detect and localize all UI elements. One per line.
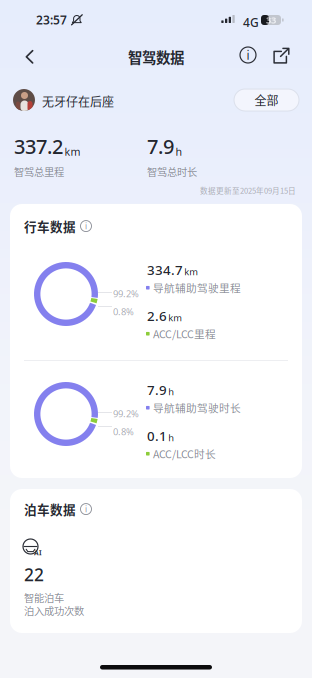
staticText: i: [85, 504, 87, 514]
staticText: 全部: [254, 91, 278, 109]
button[interactable]: 全部: [234, 89, 299, 111]
staticText: h: [168, 385, 174, 398]
staticText: km: [64, 145, 80, 159]
staticText: 7.9: [147, 381, 167, 399]
staticText: h: [168, 431, 174, 444]
staticText: 行车数据: [24, 217, 76, 235]
staticText: km: [184, 265, 198, 278]
staticText: 导航辅助驾驶里程: [153, 280, 241, 295]
staticText: 智驾总里程: [14, 164, 64, 179]
staticText: 0.1: [147, 427, 167, 445]
staticText: 99.2%: [113, 287, 139, 300]
staticText: 337.2: [14, 133, 63, 160]
staticText: i: [85, 221, 87, 231]
staticText: 7.9: [147, 133, 174, 160]
staticText: 4G: [243, 14, 259, 30]
staticText: i: [246, 47, 249, 63]
staticText: 23:57: [36, 12, 67, 28]
staticText: 数据更新至2025年09月15日: [200, 185, 296, 196]
staticText: h: [175, 145, 182, 159]
staticText: 智驾数据: [128, 46, 184, 67]
staticText: 泊车数据: [24, 500, 76, 518]
staticText: 导航辅助驾驶时长: [153, 400, 241, 415]
button[interactable]: Share: [268, 42, 295, 69]
staticText: ACC/LCC里程: [153, 326, 216, 341]
staticText: 无牙仔在后座: [42, 92, 114, 110]
button[interactable]: Back: [17, 43, 42, 70]
staticText: km: [168, 311, 182, 324]
staticText: AI: [34, 548, 42, 557]
staticText: 0.8%: [113, 425, 134, 438]
staticText: 智驾总时长: [147, 164, 197, 179]
button[interactable]: Info: [235, 42, 261, 68]
staticText: 泊入成功次数: [24, 603, 84, 618]
staticText: 智能泊车: [24, 590, 64, 605]
staticText: 334.7: [147, 261, 183, 279]
staticText: ACC/LCC时长: [153, 446, 216, 461]
staticText: 99.2%: [113, 407, 139, 420]
staticText: 22: [24, 563, 44, 586]
staticText: 2.6: [147, 307, 167, 325]
staticText: 33: [266, 14, 276, 26]
staticText: 0.8%: [113, 305, 134, 318]
